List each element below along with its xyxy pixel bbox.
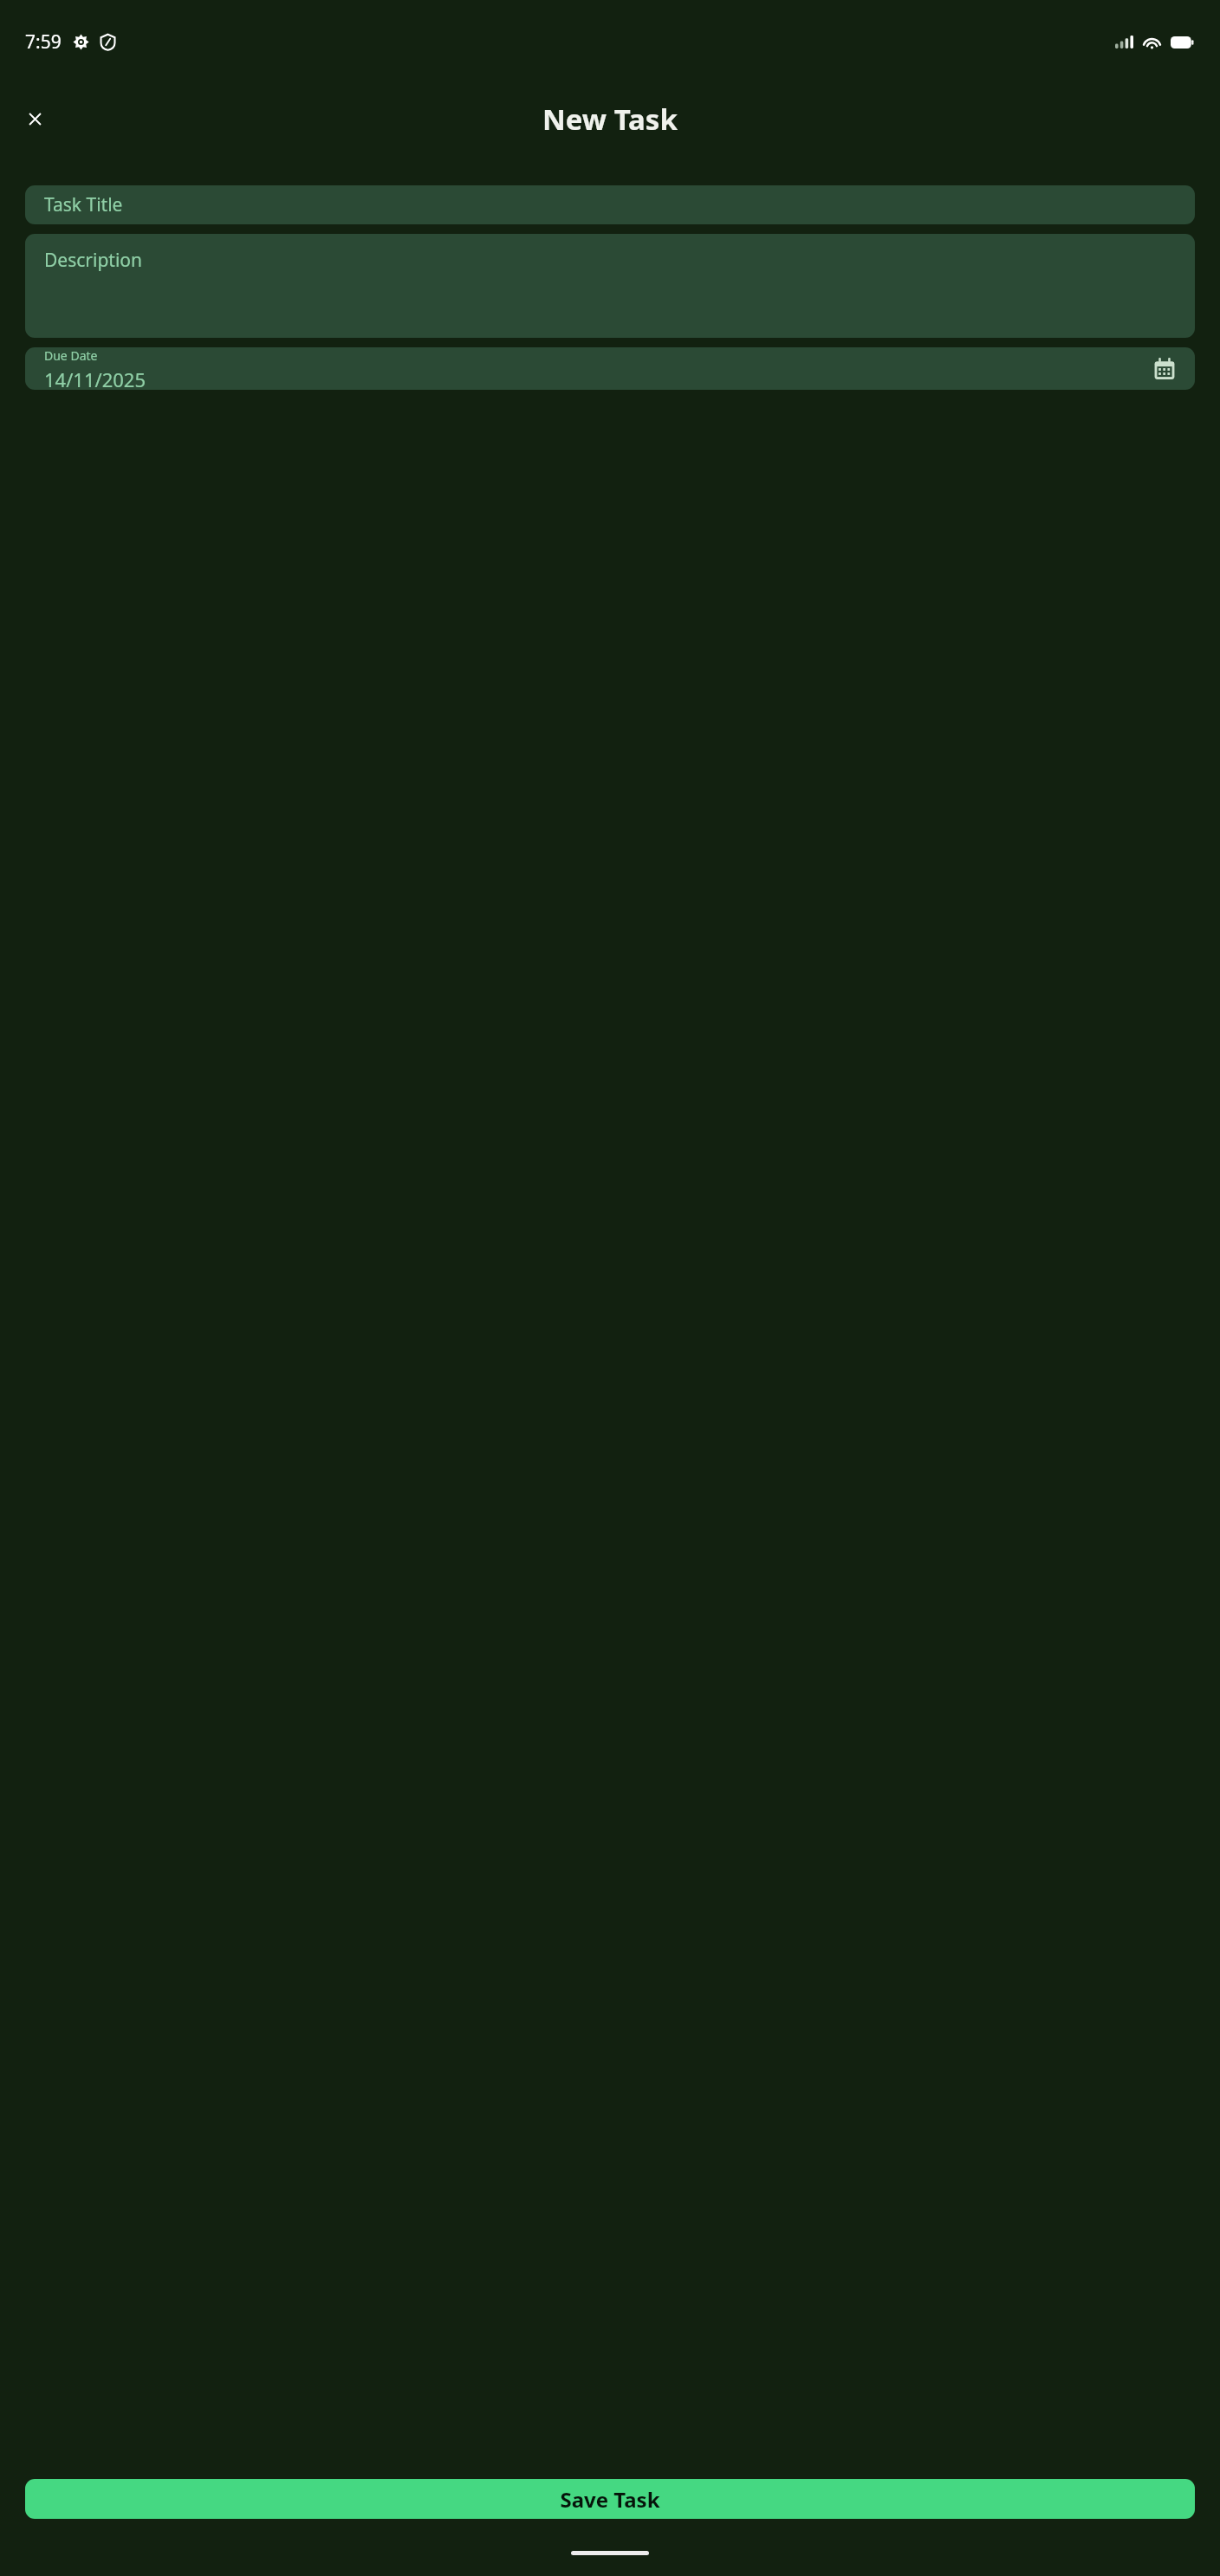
button[interactable]: Close [14, 98, 55, 139]
staticText: Save Task [560, 2485, 660, 2514]
button[interactable]: Pick date [1150, 354, 1179, 384]
staticText: New Task [542, 100, 678, 139]
staticText: Description [44, 248, 143, 273]
staticText: 14/11/2025 [44, 366, 146, 390]
button[interactable]: Due Date [25, 347, 1195, 390]
button[interactable]: Task Title [25, 185, 1195, 224]
staticText: Due Date [44, 347, 98, 364]
button[interactable]: Description [25, 234, 1195, 338]
staticText: Task Title [44, 192, 123, 217]
button[interactable]: Save Task [25, 2479, 1195, 2519]
staticText: 7:59 [25, 29, 62, 55]
